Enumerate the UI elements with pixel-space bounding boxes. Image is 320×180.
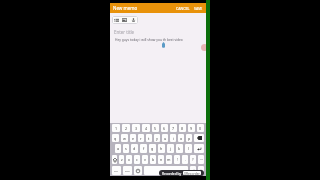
staticText: w bbox=[123, 136, 126, 141]
staticText: 8 bbox=[181, 126, 184, 131]
button[interactable]: Shift bbox=[112, 155, 117, 164]
staticText: ! bbox=[177, 157, 178, 162]
staticText: r bbox=[140, 136, 142, 141]
staticText: g bbox=[151, 146, 154, 151]
button[interactable]: 7 bbox=[170, 124, 177, 132]
staticText: x bbox=[128, 157, 130, 162]
staticText: . bbox=[185, 157, 186, 162]
staticText: 5 bbox=[154, 126, 157, 131]
button[interactable]: c bbox=[134, 155, 140, 164]
button[interactable]: Insert image bbox=[120, 16, 129, 24]
button[interactable]: m bbox=[166, 155, 172, 164]
staticText: XRecorder bbox=[184, 171, 200, 175]
button[interactable]: Ctrl bbox=[112, 166, 121, 175]
staticText: o bbox=[180, 136, 183, 141]
staticText: 0 bbox=[199, 126, 202, 131]
button[interactable]: 0 bbox=[197, 124, 204, 132]
button[interactable]: h bbox=[158, 144, 165, 153]
staticText: Enter title bbox=[114, 29, 135, 35]
button[interactable]: o bbox=[178, 134, 184, 142]
staticText: 6 bbox=[163, 126, 166, 131]
button[interactable]: l bbox=[185, 144, 192, 153]
staticText: t bbox=[148, 136, 150, 141]
button[interactable]: 4 bbox=[142, 124, 150, 132]
staticText: f bbox=[143, 146, 145, 151]
button[interactable]: k bbox=[176, 144, 183, 153]
button[interactable]: j bbox=[167, 144, 174, 153]
button[interactable]: y bbox=[154, 134, 160, 142]
staticText: e bbox=[132, 136, 135, 141]
staticText: English bbox=[162, 169, 171, 172]
button[interactable]: 6 bbox=[161, 124, 168, 132]
staticText: u bbox=[164, 136, 167, 141]
staticText: p bbox=[188, 136, 191, 141]
button[interactable]: CANCEL bbox=[174, 4, 192, 13]
button[interactable]: SAVE bbox=[192, 4, 205, 13]
staticText: j bbox=[170, 146, 171, 151]
button[interactable]: v bbox=[142, 155, 148, 164]
button[interactable]: Backspace bbox=[194, 134, 204, 142]
button[interactable]: t bbox=[146, 134, 152, 142]
staticText: a bbox=[117, 146, 120, 151]
button[interactable]: Voice recording bbox=[129, 16, 138, 24]
button[interactable]: 5 bbox=[152, 124, 159, 132]
button[interactable]: i bbox=[170, 134, 176, 142]
staticText: 9 bbox=[190, 126, 193, 131]
staticText: i bbox=[173, 136, 174, 141]
button[interactable]: Options bbox=[198, 155, 204, 164]
button[interactable]: 1 bbox=[112, 124, 120, 132]
staticText: z bbox=[121, 157, 123, 162]
button[interactable]: p bbox=[186, 134, 192, 142]
staticText: Ctrl bbox=[114, 169, 119, 172]
staticText: New memo bbox=[113, 5, 138, 11]
button[interactable]: r bbox=[138, 134, 144, 142]
button[interactable]: g bbox=[149, 144, 156, 153]
button[interactable]: 8 bbox=[179, 124, 186, 132]
staticText: k bbox=[178, 146, 181, 151]
button[interactable]: Left bbox=[190, 166, 196, 175]
button[interactable]: e bbox=[130, 134, 136, 142]
button[interactable]: Emoji bbox=[134, 166, 142, 175]
staticText: 7 bbox=[172, 126, 175, 131]
staticText: 3 bbox=[135, 126, 138, 131]
button[interactable]: 3 bbox=[132, 124, 140, 132]
button[interactable]: Enter bbox=[194, 144, 204, 153]
staticText: 2 bbox=[125, 126, 128, 131]
button[interactable]: a bbox=[115, 144, 121, 153]
button[interactable]: Recorder bbox=[201, 44, 208, 51]
staticText: q bbox=[114, 136, 117, 141]
button[interactable]: f bbox=[140, 144, 147, 153]
staticText: 4 bbox=[145, 126, 148, 131]
staticText: Sym bbox=[125, 169, 130, 172]
staticText: m bbox=[167, 157, 171, 162]
button[interactable]: Sym bbox=[123, 166, 132, 175]
button[interactable]: d bbox=[131, 144, 138, 153]
staticText: s bbox=[125, 146, 127, 151]
button[interactable]: . bbox=[182, 155, 188, 164]
button[interactable]: s bbox=[123, 144, 129, 153]
staticText: c bbox=[136, 157, 138, 162]
staticText: b bbox=[152, 157, 155, 162]
button[interactable]: ! bbox=[174, 155, 180, 164]
button[interactable]: z bbox=[119, 155, 124, 164]
staticText: n bbox=[160, 157, 163, 162]
staticText: v bbox=[144, 157, 146, 162]
button[interactable]: b bbox=[150, 155, 156, 164]
staticText: y bbox=[156, 136, 158, 141]
button[interactable]: English bbox=[144, 166, 188, 175]
button[interactable]: q bbox=[112, 134, 119, 142]
button[interactable]: n bbox=[158, 155, 164, 164]
staticText: Recorded by bbox=[162, 171, 183, 175]
button[interactable]: w bbox=[121, 134, 128, 142]
button[interactable]: 2 bbox=[122, 124, 130, 132]
button[interactable]: Right bbox=[198, 166, 204, 175]
button[interactable]: Bulleted list bbox=[112, 16, 120, 24]
button[interactable]: ? bbox=[190, 155, 196, 164]
staticText: ? bbox=[192, 157, 194, 162]
button[interactable]: u bbox=[162, 134, 168, 142]
staticText: h bbox=[160, 146, 163, 151]
staticText: Hey guys today i will show you th best v… bbox=[115, 37, 183, 41]
button[interactable]: x bbox=[126, 155, 132, 164]
button[interactable]: 9 bbox=[188, 124, 195, 132]
staticText: 1 bbox=[115, 126, 118, 131]
